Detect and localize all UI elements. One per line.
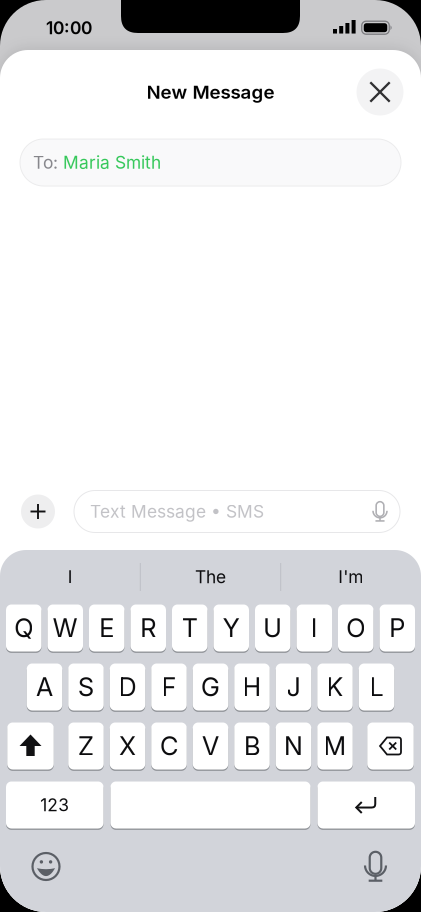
staticText: Z [78,731,94,761]
staticText: T [182,613,198,643]
staticText: The [195,567,226,587]
button[interactable]: G [193,663,228,710]
staticText: Text Message • SMS [90,501,264,522]
staticText: O [346,613,365,643]
button[interactable]: Q [6,604,41,651]
button[interactable]: Add attachment [21,494,55,528]
button[interactable]: I'm [286,561,416,593]
staticText: H [242,672,261,702]
staticText: I [68,567,73,587]
button[interactable]: B [234,722,270,769]
staticText: V [202,731,219,761]
staticText: B [244,731,260,761]
staticText: F [161,672,176,702]
button[interactable]: O [338,604,373,651]
staticText: W [53,613,78,643]
button[interactable]: I [5,561,135,593]
staticText: Maria Smith [63,152,161,173]
staticText: G [201,672,220,702]
button[interactable] [110,781,310,828]
button[interactable]: A [27,663,62,710]
button[interactable]: U [255,604,290,651]
button[interactable]: Z [68,722,104,769]
staticText: J [286,672,300,702]
button[interactable]: D [110,663,145,710]
button[interactable]: L [359,663,394,710]
staticText: To: [33,152,58,173]
button[interactable]: F [151,663,187,710]
staticText: S [78,672,94,702]
staticText: New Message [146,81,274,103]
staticText: R [140,613,156,643]
button[interactable]: X [110,722,145,769]
staticText: E [99,613,114,643]
button[interactable]: R [130,604,166,651]
button[interactable]: Dictate [365,496,395,526]
staticText: 123 [40,795,69,815]
button[interactable]: S [68,663,104,710]
staticText: U [263,613,282,643]
button[interactable]: Delete [367,722,414,769]
button[interactable]: Emoji [24,844,68,888]
button[interactable]: N [276,722,311,769]
staticText: I'm [338,567,363,587]
staticText: P [389,613,405,643]
staticText: X [119,731,136,761]
button[interactable]: P [379,604,415,651]
button[interactable]: T [172,604,207,651]
staticText: M [323,731,346,761]
staticText: C [160,731,178,761]
button[interactable]: E [89,604,124,651]
staticText: Y [223,613,240,643]
staticText: N [284,731,303,761]
button[interactable]: Return [317,781,415,828]
button[interactable]: C [151,722,187,769]
button[interactable]: Y [213,604,249,651]
staticText: I [311,613,318,643]
button[interactable]: J [276,663,311,710]
staticText: A [36,672,53,702]
button[interactable]: The [145,561,275,593]
staticText: L [369,672,383,702]
button[interactable]: H [234,663,270,710]
button[interactable]: I [296,604,332,651]
staticText: Q [14,613,33,643]
button[interactable]: M [317,722,353,769]
button[interactable]: V [193,722,228,769]
button[interactable]: 123 [6,781,103,828]
staticText: 10:00 [46,18,92,38]
button[interactable]: W [47,604,83,651]
button[interactable]: Shift [7,722,54,769]
button[interactable]: Dictation [353,844,397,888]
staticText: K [326,672,343,702]
button[interactable]: Close [356,68,403,115]
button[interactable]: K [317,663,353,710]
staticText: D [118,672,136,702]
